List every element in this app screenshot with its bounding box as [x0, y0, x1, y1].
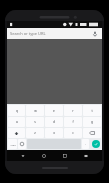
button[interactable]: Enter — [90, 139, 101, 149]
button[interactable]: c — [64, 128, 82, 138]
staticText: w — [34, 109, 37, 113]
staticText: a — [16, 120, 18, 124]
staticText: r — [72, 109, 74, 113]
button[interactable]: t — [83, 105, 101, 116]
button[interactable]: a — [8, 117, 25, 127]
button[interactable]: Hide keyboard — [81, 151, 91, 161]
button[interactable]: ?123 — [8, 139, 17, 149]
staticText: x — [53, 131, 55, 135]
button[interactable]: Backspace — [83, 128, 101, 138]
button[interactable]: Shift — [8, 128, 25, 138]
staticText: q — [16, 109, 18, 113]
staticText: e — [53, 109, 55, 113]
button[interactable]: s — [26, 117, 44, 127]
button[interactable]: w — [26, 105, 44, 116]
button[interactable]: . — [82, 139, 89, 149]
button[interactable]: Recent apps — [60, 151, 70, 161]
button[interactable]: g — [83, 117, 101, 127]
staticText: s — [34, 120, 36, 124]
button[interactable]: q — [8, 105, 25, 116]
staticText: ?123 — [10, 143, 16, 146]
staticText: g — [91, 120, 93, 124]
button[interactable]: r — [64, 105, 82, 116]
staticText: Search or type URL — [10, 31, 46, 36]
button[interactable]: Emoji — [18, 139, 26, 149]
staticText: z — [34, 131, 36, 135]
button[interactable]: Back — [18, 151, 28, 161]
staticText: c — [72, 131, 74, 135]
staticText: t — [91, 109, 93, 113]
button[interactable]: Home — [39, 151, 49, 161]
staticText: f — [72, 120, 74, 124]
button[interactable]: z — [26, 128, 44, 138]
staticText: . — [85, 142, 86, 146]
staticText: d — [53, 120, 55, 124]
button[interactable]: Search or type URL — [7, 28, 102, 39]
button[interactable]: e — [45, 105, 63, 116]
button[interactable]: x — [45, 128, 63, 138]
button[interactable]: Voice search — [91, 30, 99, 38]
button[interactable]: d — [45, 117, 63, 127]
button[interactable]: f — [64, 117, 82, 127]
